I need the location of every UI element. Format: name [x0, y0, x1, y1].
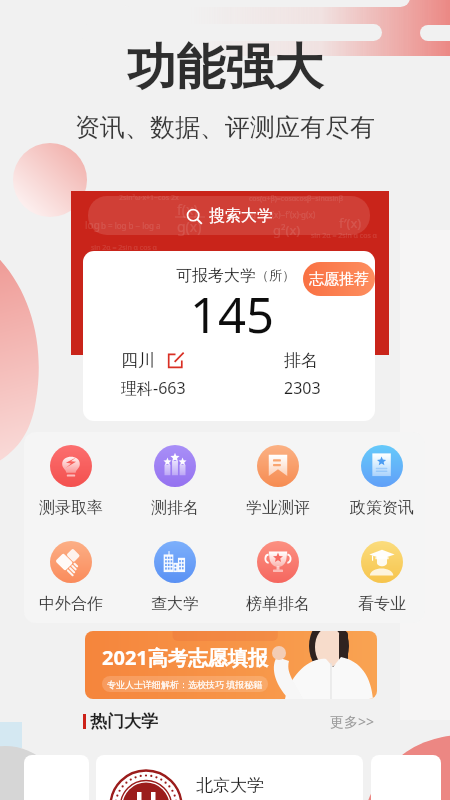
button[interactable]: 学业测评	[231, 445, 325, 518]
staticText: f(x)	[177, 200, 198, 219]
staticText: log	[85, 218, 100, 232]
staticText: 志愿推荐	[309, 270, 369, 289]
staticText: 功能强大	[0, 37, 450, 99]
button[interactable]: 中外合作	[24, 541, 118, 614]
staticText: 测排名	[151, 498, 199, 518]
staticText: 资讯、数据、评测应有尽有	[0, 112, 450, 143]
staticText: 查大学	[151, 594, 199, 614]
staticText: 排名	[284, 350, 318, 371]
staticText: 2021高考志愿填报	[102, 644, 268, 671]
staticText: sin 2α = 2sin α cos α	[91, 243, 157, 253]
staticText: 可报考大学	[176, 266, 256, 286]
button[interactable]: 榜单排名	[231, 541, 325, 614]
staticText: 2303	[284, 377, 321, 399]
button[interactable]: 政策资讯	[335, 445, 425, 518]
button[interactable]: 看专业	[335, 541, 425, 614]
staticText: f′(x)	[339, 214, 362, 232]
button[interactable]: 测录取率	[24, 445, 118, 518]
staticText: g(x)	[177, 217, 202, 236]
staticText: 榜单排名	[246, 594, 310, 614]
button[interactable]	[371, 755, 441, 800]
staticText: cos(α+β)=cosαcosβ−sinαsinβ	[249, 194, 343, 204]
staticText: sin 2α = 2sin α cos α	[311, 231, 377, 241]
staticText: 搜索大学	[209, 206, 273, 226]
staticText: 2sin²ω·x+1−cos 2x	[119, 193, 179, 203]
button[interactable]: 志愿推荐	[303, 262, 375, 296]
button[interactable]: 查大学	[128, 541, 222, 614]
staticText: g′(x)·f(x)−f′(x)·g(x)	[251, 209, 316, 220]
button[interactable]: 编辑	[167, 352, 184, 369]
staticText: g²(x)	[273, 221, 301, 239]
staticText: 理科-663	[121, 377, 186, 399]
staticText: 145	[190, 281, 275, 348]
staticText: 专业人士详细解析：选校技巧 填报秘籍	[107, 678, 263, 690]
staticText: 测录取率	[39, 498, 103, 518]
button[interactable]: 更多>>	[330, 712, 375, 731]
staticText: 四川	[121, 350, 155, 371]
staticText: 看专业	[358, 594, 406, 614]
staticText: 政策资讯	[350, 498, 414, 518]
staticText: （所）	[256, 267, 295, 283]
staticText: 学业测评	[246, 498, 310, 518]
button[interactable]: 北京大学	[96, 755, 363, 800]
staticText: 热门大学	[90, 711, 158, 732]
button[interactable]: 测排名	[128, 445, 222, 518]
staticText: 北京大学	[196, 775, 264, 796]
staticText: 中外合作	[39, 594, 103, 614]
button[interactable]: 搜索大学	[88, 196, 370, 235]
button[interactable]: 2021高考志愿填报	[85, 631, 377, 699]
staticText: b = log b − log a	[101, 220, 161, 231]
